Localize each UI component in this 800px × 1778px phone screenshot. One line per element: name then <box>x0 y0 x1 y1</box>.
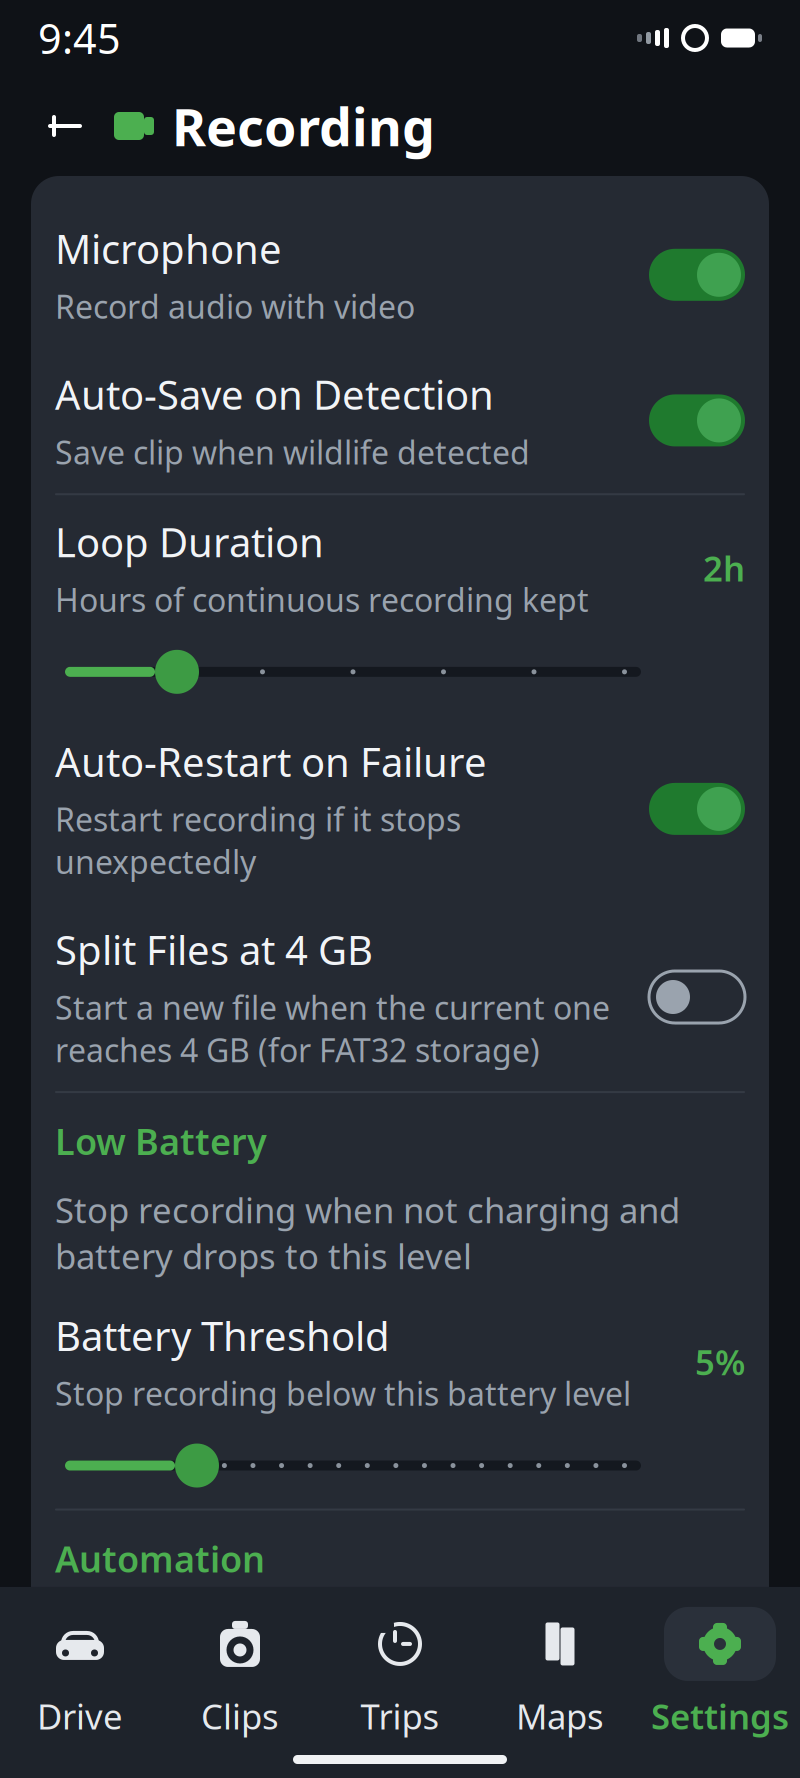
button[interactable]: Clips <box>160 1607 320 1739</box>
button[interactable]: Microphone <box>31 202 769 348</box>
button[interactable]: Auto-Restart on Failure <box>31 715 769 903</box>
staticText: Auto-Save on Detection <box>55 368 494 421</box>
staticText: Trips <box>360 1693 439 1739</box>
staticText: Settings <box>651 1693 789 1739</box>
staticText: Save clip when wildlife detected <box>55 431 530 473</box>
staticText: Stop recording below this battery level <box>55 1372 631 1415</box>
staticText: 2h <box>703 545 745 591</box>
staticText: Loop Duration <box>55 515 324 568</box>
staticText: Record audio with video <box>55 285 415 328</box>
button[interactable]: Settings <box>640 1607 800 1739</box>
staticText: Auto-Restart on Failure <box>55 735 487 788</box>
staticText: Stop recording when not charging and bat… <box>55 1187 680 1279</box>
staticText: Automation <box>55 1534 265 1582</box>
staticText: Microphone <box>55 222 282 275</box>
button[interactable]: Trips <box>320 1607 480 1739</box>
button[interactable]: Drive <box>0 1607 160 1739</box>
staticText: Low Battery <box>55 1117 267 1165</box>
button[interactable]: Maps <box>480 1607 640 1739</box>
button[interactable]: Back <box>40 101 90 151</box>
staticText: Maps <box>516 1693 604 1739</box>
staticText: Battery Threshold <box>55 1309 390 1362</box>
button[interactable]: Split Files at 4 GB <box>31 903 769 1091</box>
staticText: Impact / Hard Braking Alerts <box>55 1606 588 1659</box>
staticText: Restart recording if it stops unexpected… <box>55 798 461 883</box>
staticText: 9:45 <box>38 11 121 65</box>
staticText: Start a new file when the current one re… <box>55 986 610 1071</box>
staticText: 5% <box>695 1339 745 1385</box>
staticText: Split Files at 4 GB <box>55 923 373 976</box>
staticText: Show alert and save clip on hard braking… <box>55 1669 540 1754</box>
staticText: Clips <box>201 1693 279 1739</box>
button[interactable]: Impact / Hard Braking Alerts <box>31 1586 769 1774</box>
staticText: Recording <box>172 91 435 161</box>
staticText: Drive <box>37 1693 123 1739</box>
button[interactable]: Auto-Save on Detection <box>31 348 769 493</box>
staticText: Hours of continuous recording kept <box>55 578 589 621</box>
